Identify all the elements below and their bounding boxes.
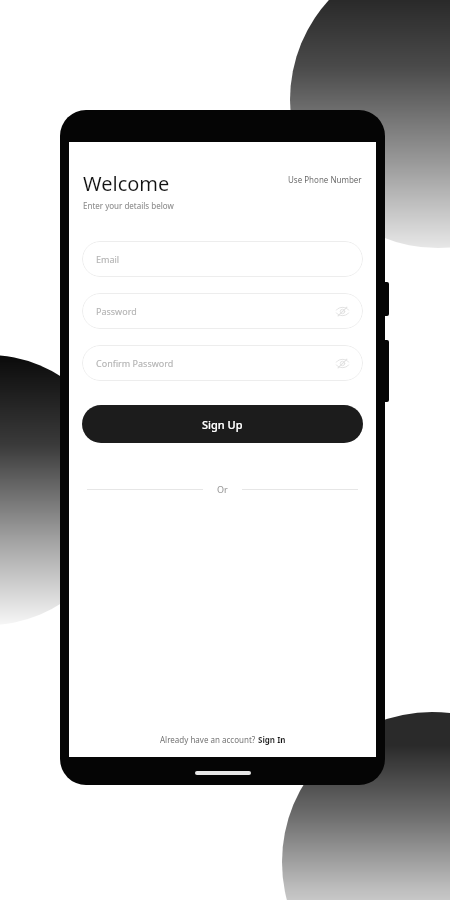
button[interactable]: Use Phone Number — [288, 170, 362, 185]
button[interactable]: Already have an account? — [69, 734, 376, 757]
staticText: Use Phone Number — [288, 174, 362, 185]
other: Toggle password visibility — [336, 357, 349, 370]
staticText: Welcome — [83, 170, 170, 197]
button[interactable]: Email — [82, 241, 363, 277]
button[interactable]: Password — [82, 293, 363, 329]
staticText: Enter your details below — [83, 200, 174, 211]
staticText: Sign Up — [202, 417, 243, 432]
staticText: Password — [96, 305, 336, 317]
staticText: Confirm Password — [96, 357, 336, 369]
other: Toggle password visibility — [336, 305, 349, 318]
button[interactable]: Confirm Password — [82, 345, 363, 381]
staticText: Already have an account? — [160, 734, 258, 745]
staticText: Email — [96, 253, 349, 265]
staticText: Sign In — [258, 734, 286, 745]
button[interactable]: Sign Up — [82, 405, 363, 443]
staticText: Or — [217, 483, 228, 495]
